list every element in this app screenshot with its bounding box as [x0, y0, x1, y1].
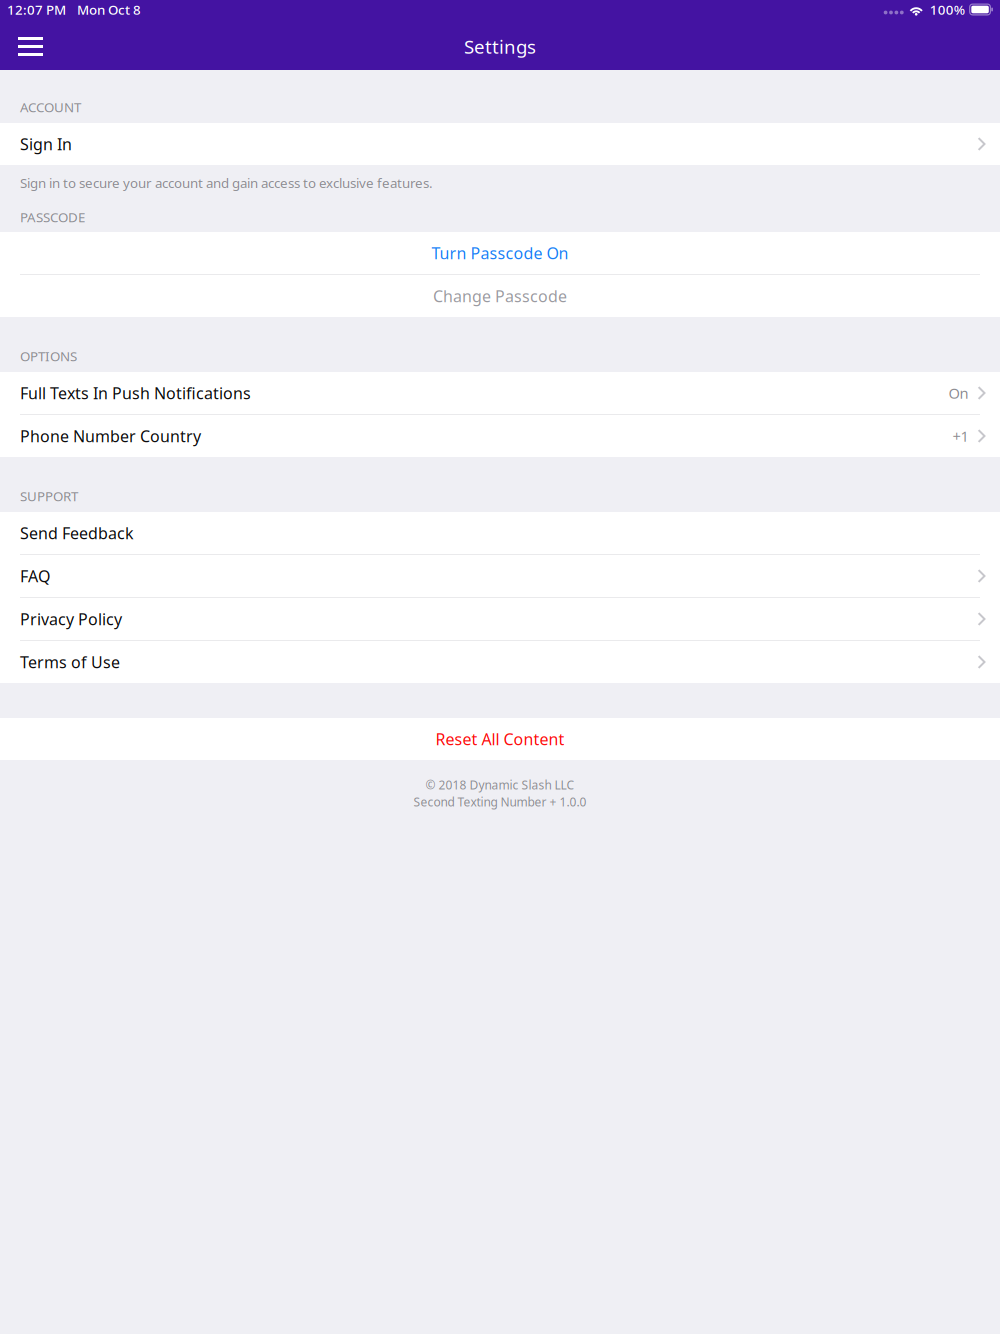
staticText: Change Passcode	[433, 285, 567, 307]
staticText: Terms of Use	[20, 651, 120, 673]
button[interactable]: Send Feedback	[0, 512, 1000, 554]
staticText: Mon Oct 8	[77, 1, 141, 18]
staticText: PASSCODE	[20, 208, 85, 226]
staticText: Turn Passcode On	[431, 242, 568, 264]
staticText: Full Texts In Push Notifications	[20, 382, 251, 404]
staticText: Reset All Content	[435, 728, 564, 750]
button[interactable]: Phone Number Country	[0, 415, 1000, 457]
button[interactable]: Reset All Content	[0, 718, 1000, 760]
staticText: Settings	[464, 34, 536, 59]
staticText: SUPPORT	[20, 487, 78, 505]
staticText: Send Feedback	[20, 522, 134, 544]
staticText: 100%	[930, 1, 965, 18]
staticText: OPTIONS	[20, 347, 77, 365]
staticText: +1	[952, 426, 968, 446]
button[interactable]: Full Texts In Push Notifications	[0, 372, 1000, 414]
staticText: 12:07 PM	[7, 1, 66, 18]
button[interactable]: Change Passcode	[0, 275, 1000, 317]
staticText: Second Texting Number + 1.0.0	[413, 794, 586, 810]
staticText: Phone Number Country	[20, 425, 201, 447]
staticText: ACCOUNT	[20, 98, 81, 116]
button[interactable]: Sign In	[0, 123, 1000, 165]
staticText: FAQ	[20, 565, 50, 587]
button[interactable]: Turn Passcode On	[0, 232, 1000, 274]
staticText: Privacy Policy	[20, 608, 122, 630]
staticText: Sign In	[20, 133, 72, 155]
staticText: On	[948, 383, 968, 403]
button[interactable]: Privacy Policy	[0, 598, 1000, 640]
staticText: © 2018 Dynamic Slash LLC	[425, 777, 574, 793]
staticText: Sign in to secure your account and gain …	[20, 174, 433, 192]
button[interactable]: Terms of Use	[0, 641, 1000, 683]
button[interactable]: FAQ	[0, 555, 1000, 597]
button[interactable]: Menu	[8, 24, 53, 68]
